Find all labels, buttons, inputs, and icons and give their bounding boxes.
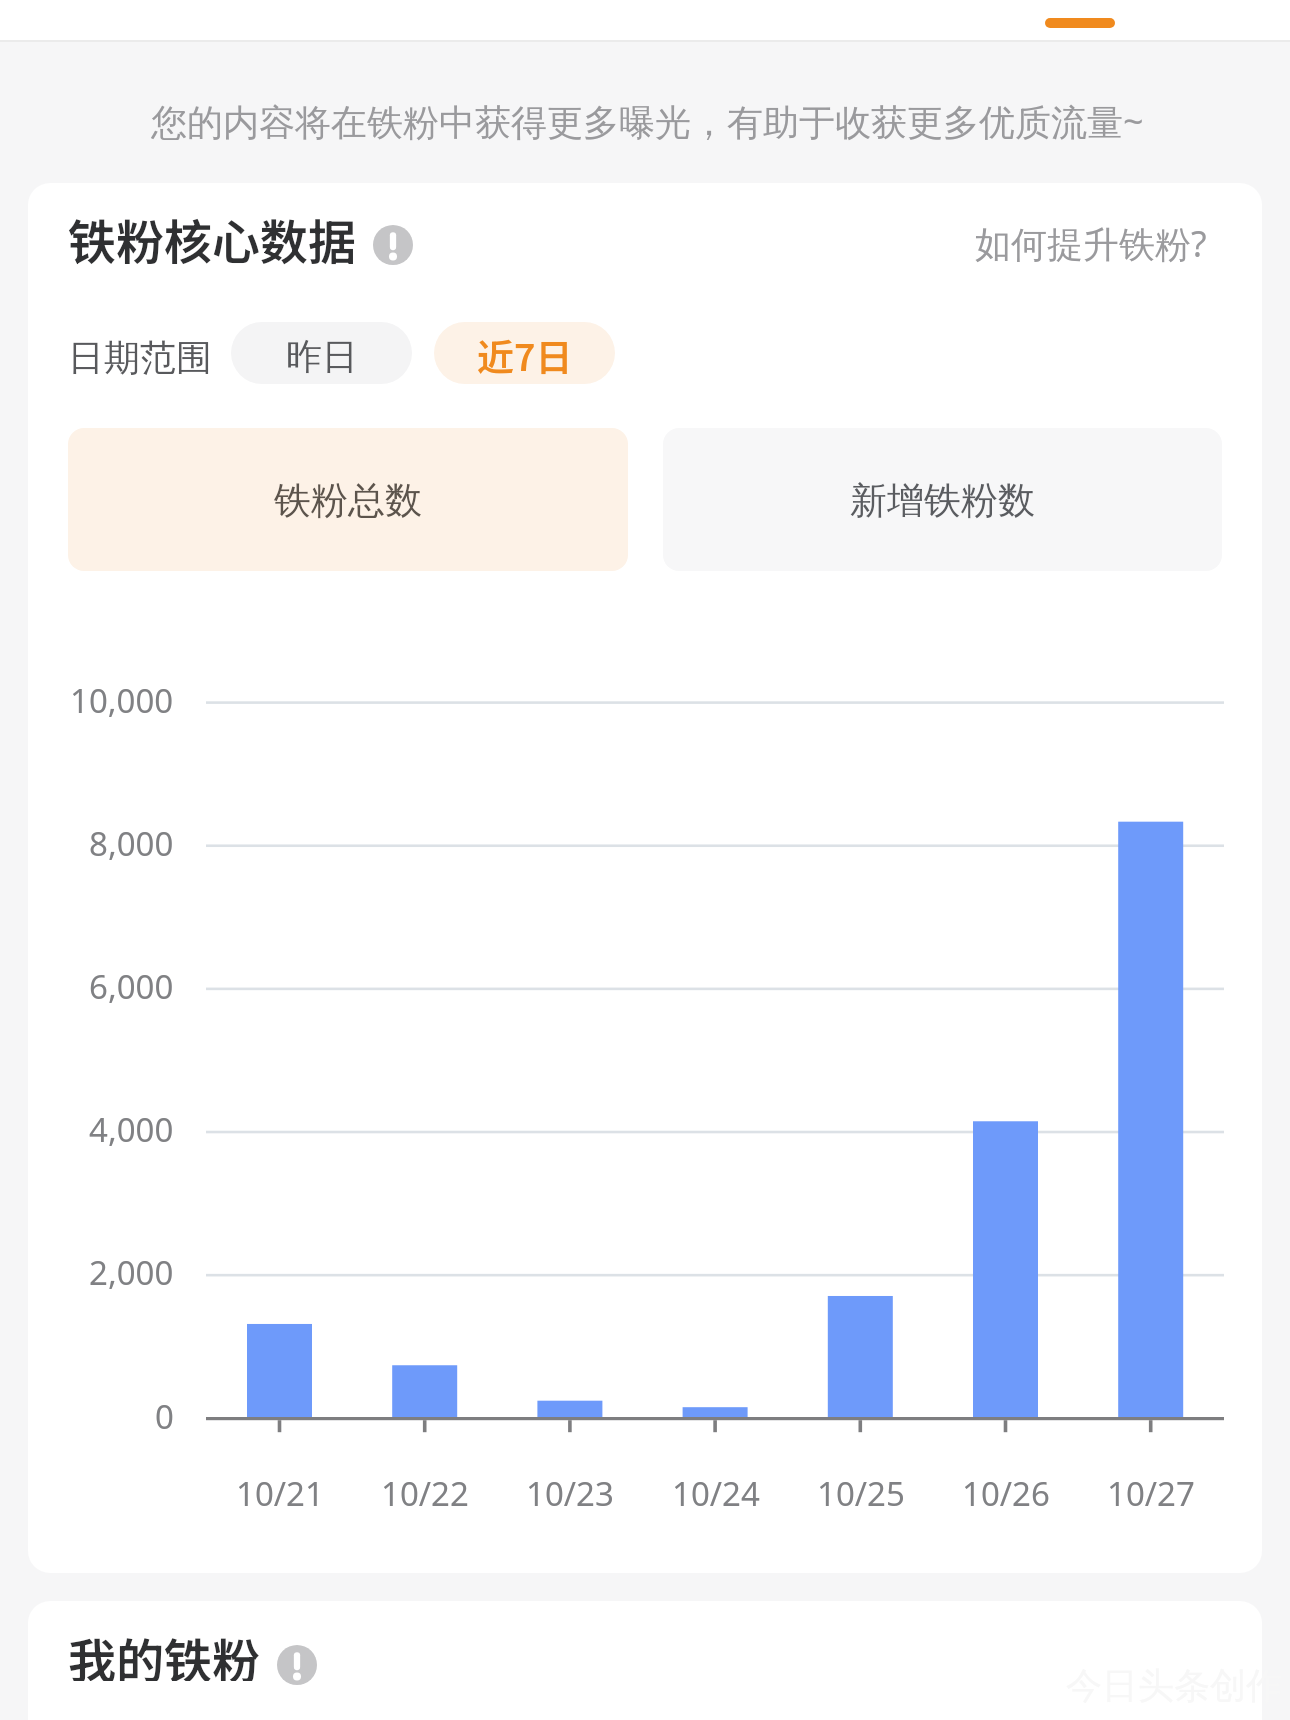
button[interactable]: 当前选中标签 bbox=[1045, 18, 1115, 28]
staticText: 8,000 bbox=[89, 821, 174, 866]
staticText: 10,000 bbox=[70, 678, 174, 723]
staticText: 新增铁粉数 bbox=[850, 477, 1035, 524]
staticText: 铁粉核心数据 bbox=[68, 204, 357, 266]
staticText: 日期范围 bbox=[68, 335, 212, 380]
staticText: 10/21 bbox=[236, 1471, 324, 1516]
button[interactable]: 近7日 bbox=[434, 322, 615, 384]
staticText: 10/25 bbox=[817, 1471, 905, 1516]
button[interactable]: 新增铁粉数 bbox=[663, 428, 1222, 571]
staticText: 10/27 bbox=[1107, 1471, 1195, 1516]
staticText: 昨日 bbox=[286, 334, 358, 379]
button[interactable]: 如何提升铁粉? bbox=[28, 183, 288, 245]
staticText: 2,000 bbox=[89, 1250, 174, 1295]
staticText: 10/26 bbox=[962, 1471, 1050, 1516]
staticText: 我的铁粉 bbox=[68, 1623, 261, 1681]
staticText: 您的内容将在铁粉中获得更多曝光，有助于收获更多优质流量~ bbox=[151, 97, 1144, 146]
button[interactable]: 铁粉总数 bbox=[68, 428, 628, 571]
staticText: 0 bbox=[155, 1394, 174, 1439]
staticText: 今日头条创作 bbox=[1066, 1663, 1282, 1708]
staticText: 近7日 bbox=[477, 328, 573, 382]
button[interactable]: 铁粉核心数据说明 bbox=[365, 217, 421, 273]
staticText: 10/22 bbox=[381, 1471, 469, 1516]
staticText: 6,000 bbox=[89, 964, 174, 1009]
staticText: 铁粉总数 bbox=[274, 477, 422, 524]
staticText: 如何提升铁粉? bbox=[975, 219, 1207, 268]
staticText: 4,000 bbox=[89, 1107, 174, 1152]
button[interactable]: 我的铁粉说明 bbox=[271, 1639, 323, 1691]
staticText: 10/24 bbox=[672, 1471, 760, 1516]
staticText: 10/23 bbox=[526, 1471, 614, 1516]
button[interactable]: 昨日 bbox=[231, 322, 412, 384]
